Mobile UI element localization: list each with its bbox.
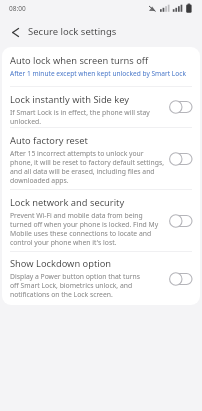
staticText: Show Lockdown option [10, 257, 112, 270]
staticText: Lock instantly with Side key [10, 93, 130, 106]
button[interactable]: Lock instantly with Side key [2, 87, 200, 127]
staticText: Display a Power button option that turns… [10, 272, 140, 299]
button[interactable] [5, 22, 25, 42]
staticText: Auto lock when screen turns off [10, 54, 149, 67]
button[interactable]: Show Lockdown option [2, 252, 200, 305]
staticText: 08:00 [9, 4, 26, 13]
staticText: Lock network and security [10, 196, 125, 209]
button[interactable]: Auto lock when screen turns off [2, 47, 200, 86]
staticText: Prevent Wi-Fi and mobile data from being… [10, 211, 159, 247]
staticText: After 1 minute except when kept unlocked… [10, 69, 186, 78]
staticText: Auto factory reset [10, 134, 88, 147]
button[interactable]: Lock network and security [2, 190, 200, 251]
staticText: After 15 incorrect attempts to unlock yo… [10, 149, 164, 185]
button[interactable]: Auto factory reset [2, 128, 200, 189]
staticText: Secure lock settings [28, 25, 117, 38]
staticText: If Smart Lock is in effect, the phone wi… [10, 108, 150, 126]
